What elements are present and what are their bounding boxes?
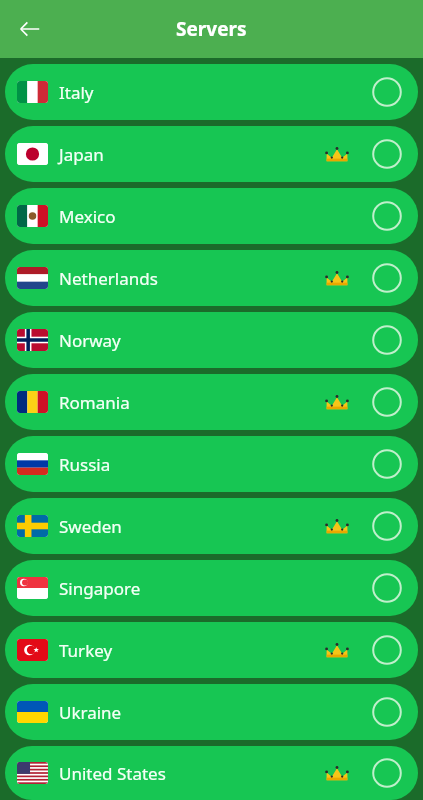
button[interactable]: Russia bbox=[5, 436, 418, 492]
staticText: Singapore bbox=[59, 577, 141, 600]
button[interactable]: Romania bbox=[5, 374, 418, 430]
staticText: Russia bbox=[59, 453, 111, 476]
staticText: Mexico bbox=[59, 205, 116, 228]
staticText: Netherlands bbox=[59, 267, 158, 290]
button[interactable]: Norway bbox=[5, 312, 418, 368]
staticText: Ukraine bbox=[59, 701, 122, 724]
button[interactable]: Netherlands bbox=[5, 250, 418, 306]
staticText: United States bbox=[59, 762, 166, 785]
button[interactable]: Singapore bbox=[5, 560, 418, 616]
staticText: Romania bbox=[59, 391, 130, 414]
button[interactable]: Mexico bbox=[5, 188, 418, 244]
button[interactable]: Back bbox=[8, 7, 52, 51]
button[interactable]: United States bbox=[5, 746, 418, 800]
staticText: Sweden bbox=[59, 515, 122, 538]
staticText: Norway bbox=[59, 329, 121, 352]
button[interactable]: Japan bbox=[5, 126, 418, 182]
staticText: Servers bbox=[176, 16, 247, 42]
staticText: Italy bbox=[59, 81, 94, 104]
staticText: Turkey bbox=[59, 639, 113, 662]
button[interactable]: Ukraine bbox=[5, 684, 418, 740]
button[interactable]: Italy bbox=[5, 64, 418, 120]
button[interactable]: Turkey bbox=[5, 622, 418, 678]
button[interactable]: Sweden bbox=[5, 498, 418, 554]
staticText: Japan bbox=[59, 143, 104, 166]
